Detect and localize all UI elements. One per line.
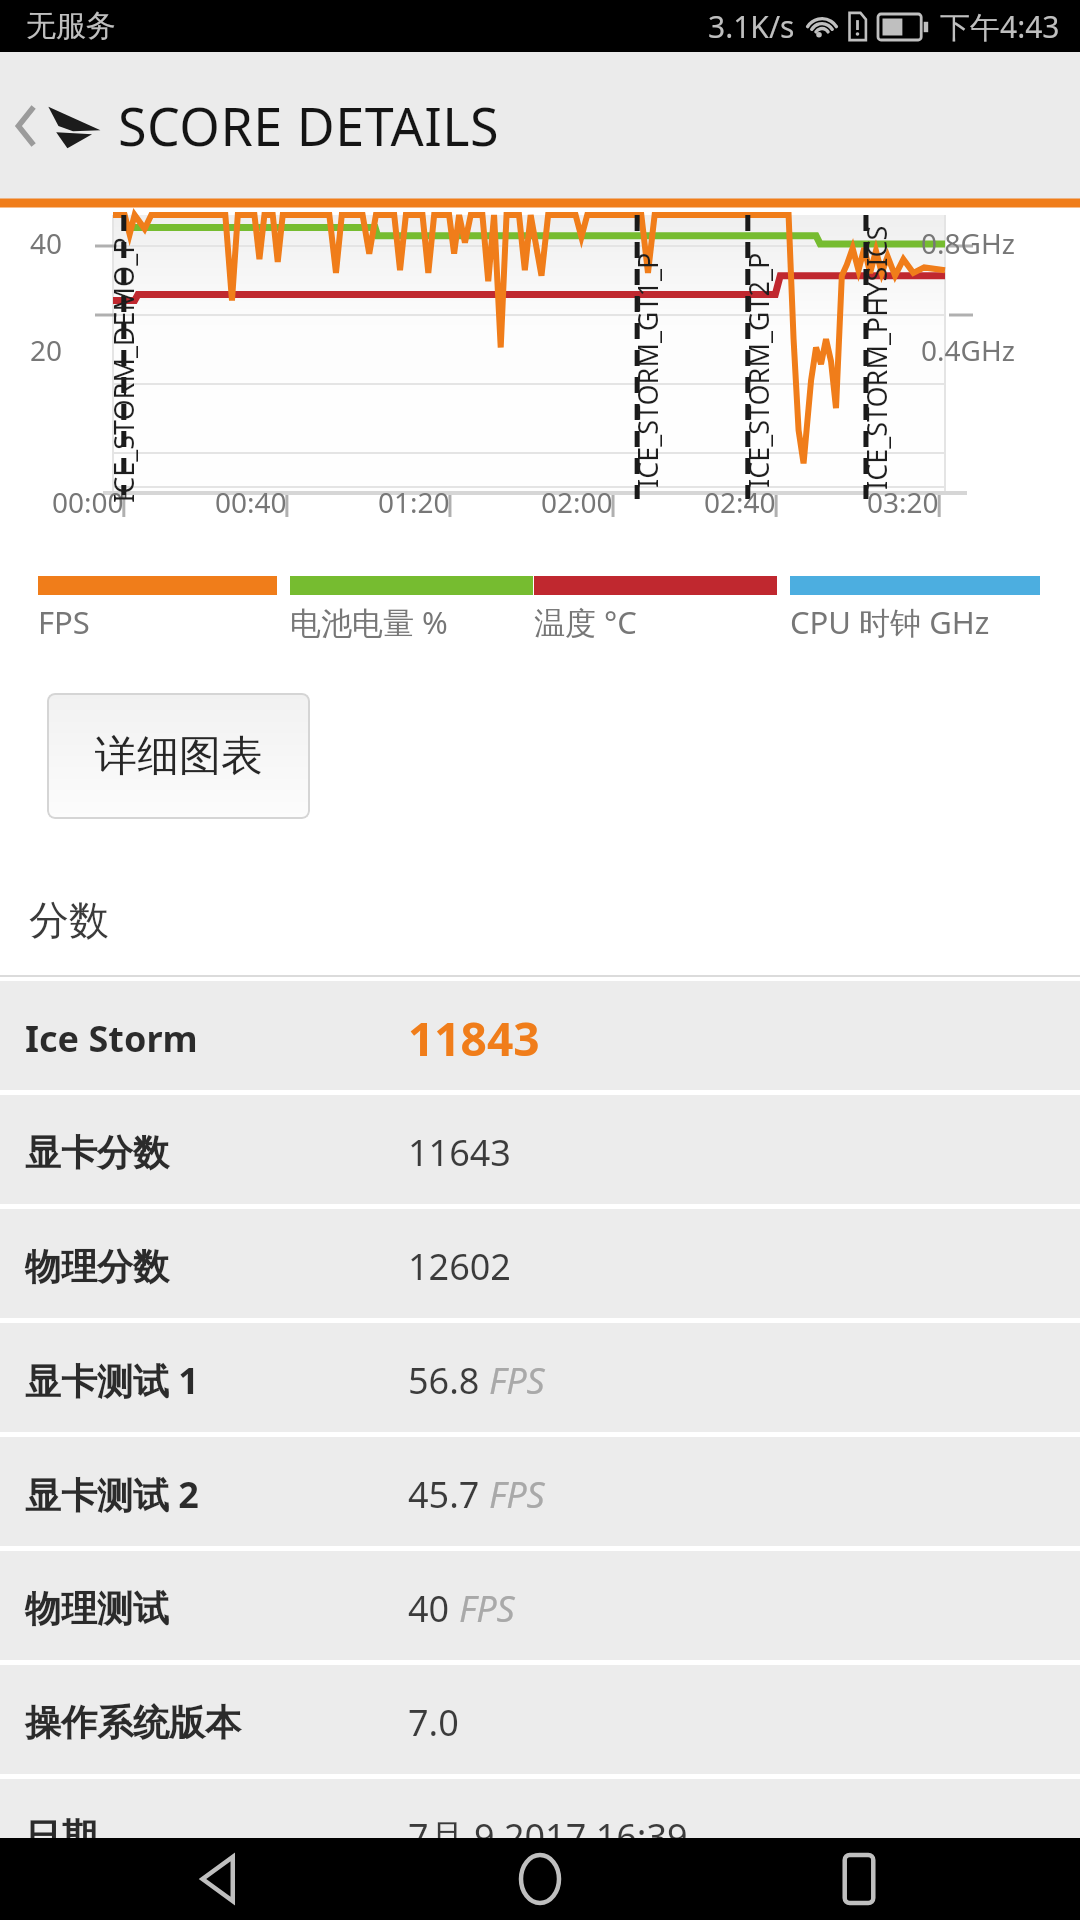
staticText: 56.8 (408, 1356, 480, 1405)
staticText: 0.4GHz (921, 331, 1015, 369)
staticText: 40 (408, 1584, 450, 1633)
staticText: 操作系统版本 (25, 1700, 241, 1745)
button[interactable]: Back (180, 1838, 262, 1920)
staticText: 02:40 (704, 483, 776, 521)
button[interactable]: Home (499, 1838, 581, 1920)
staticText: 详细图表 (95, 730, 263, 783)
staticText: 11843 (408, 1007, 540, 1070)
staticText: 3.1K/s (708, 6, 795, 47)
staticText: 物理分数 (25, 1244, 169, 1289)
button[interactable]: 显卡分数 (0, 1095, 1080, 1209)
staticText: 无服务 (26, 7, 116, 45)
staticText: 下午4:43 (940, 6, 1060, 47)
staticText: 20 (30, 331, 63, 369)
staticText: SCORE DETAILS (118, 90, 500, 161)
staticText: 电池电量 % (290, 601, 448, 643)
staticText: 12602 (408, 1242, 511, 1291)
button[interactable]: 物理测试 (0, 1551, 1080, 1665)
staticText: 00:40 (215, 483, 287, 521)
staticText: 显卡测试 1 (25, 1356, 199, 1405)
staticText: FPS (489, 1470, 545, 1519)
button[interactable]: Ice Storm (0, 981, 1080, 1095)
staticText: 显卡测试 2 (25, 1470, 199, 1519)
staticText: FPS (489, 1356, 545, 1405)
button[interactable]: 显卡测试 1 (0, 1323, 1080, 1437)
staticText: 02:00 (541, 483, 613, 521)
staticText: CPU 时钟 GHz (790, 601, 990, 643)
staticText: FPS (38, 601, 90, 643)
staticText: 7月 9 2017 16:39 (408, 1812, 688, 1861)
staticText: 11643 (408, 1128, 511, 1177)
staticText: 温度 °C (534, 601, 637, 643)
staticText: 40 (30, 224, 63, 262)
staticText: 0.8GHz (921, 224, 1015, 262)
button[interactable]: 操作系统版本 (0, 1665, 1080, 1779)
staticText: FPS (459, 1584, 515, 1633)
staticText: ICE_STORM_GT2_P (740, 252, 777, 488)
button[interactable]: Recents (818, 1838, 900, 1920)
button[interactable]: 日期 (0, 1779, 1080, 1893)
staticText: ICE_STORM_PHYSICS (858, 225, 895, 490)
button[interactable]: 物理分数 (0, 1209, 1080, 1323)
staticText: 日期 (25, 1814, 97, 1859)
staticText: 00:00 (52, 483, 124, 521)
staticText: ICE_STORM_GT1_P (629, 252, 666, 488)
button[interactable]: Back (8, 71, 116, 181)
staticText: 分数 (29, 895, 109, 945)
staticText: Ice Storm (25, 1014, 198, 1063)
staticText: 45.7 (408, 1470, 480, 1519)
staticText: 01:20 (378, 483, 450, 521)
staticText: 物理测试 (25, 1586, 169, 1631)
button[interactable]: 详细图表 (47, 693, 310, 819)
staticText: 显卡分数 (25, 1130, 169, 1175)
button[interactable]: 显卡测试 2 (0, 1437, 1080, 1551)
staticText: ICE_STORM_DEMO_P (105, 237, 142, 503)
staticText: 03:20 (867, 483, 939, 521)
staticText: 7.0 (408, 1698, 459, 1747)
